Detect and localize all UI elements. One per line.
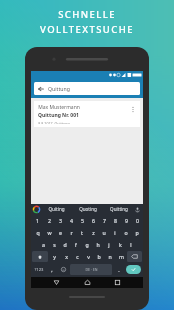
- staticText: 9: [125, 217, 128, 224]
- staticText: VOLLTEXTSUCHE: [40, 23, 134, 36]
- staticText: 2: [48, 217, 51, 224]
- staticText: g: [85, 241, 89, 248]
- staticText: t: [81, 229, 83, 236]
- button[interactable]: 3: [55, 215, 65, 225]
- button[interactable]: Back: [37, 85, 45, 93]
- button[interactable]: ,: [47, 264, 57, 275]
- button[interactable]: h: [93, 239, 103, 249]
- staticText: 5: [81, 217, 84, 224]
- staticText: ?123: [34, 267, 44, 273]
- button[interactable]: More options: [130, 104, 136, 124]
- button[interactable]: 1: [32, 215, 43, 225]
- staticText: x: [65, 253, 68, 260]
- button[interactable]: Back: [34, 82, 140, 95]
- button[interactable]: Emoji: [58, 264, 69, 275]
- staticText: .: [118, 266, 120, 273]
- button[interactable]: w: [44, 227, 54, 237]
- staticText: r: [70, 229, 73, 236]
- staticText: Quittung Nr. 001: [38, 112, 79, 119]
- staticText: Quoting: [79, 206, 97, 212]
- staticText: p: [135, 229, 139, 236]
- button[interactable]: n: [105, 251, 115, 262]
- button[interactable]: 7: [99, 215, 109, 225]
- button[interactable]: e: [55, 227, 65, 237]
- staticText: b: [97, 253, 101, 260]
- button[interactable]: .: [113, 264, 124, 275]
- button[interactable]: Voice input: [134, 206, 141, 213]
- staticText: v: [87, 253, 90, 260]
- staticText: o: [124, 229, 128, 236]
- button[interactable]: Shift: [32, 251, 48, 262]
- button[interactable]: g: [82, 239, 92, 249]
- button[interactable]: Quiting: [40, 204, 72, 214]
- button[interactable]: c: [72, 251, 82, 262]
- button[interactable]: y: [49, 251, 60, 262]
- button[interactable]: 5: [77, 215, 87, 225]
- button[interactable]: Quoting: [72, 204, 103, 214]
- button[interactable]: Home: [82, 277, 93, 288]
- staticText: c: [76, 253, 79, 260]
- button[interactable]: Google: [33, 206, 40, 213]
- staticText: z: [92, 229, 95, 236]
- staticText: f: [75, 241, 77, 248]
- staticText: 8: [114, 217, 117, 224]
- staticText: ,: [51, 266, 53, 273]
- button[interactable]: j: [104, 239, 114, 249]
- staticText: s: [53, 241, 56, 248]
- staticText: w: [47, 229, 52, 236]
- button[interactable]: 9: [121, 215, 131, 225]
- staticText: SCHNELLE: [58, 8, 116, 21]
- staticText: 8.8.2017 Quittung: [38, 121, 70, 124]
- button[interactable]: v: [83, 251, 93, 262]
- button[interactable]: ?123: [32, 264, 46, 275]
- button[interactable]: Recent apps: [112, 277, 123, 288]
- button[interactable]: r: [66, 227, 76, 237]
- staticText: 7: [103, 217, 106, 224]
- staticText: Quiting: [48, 206, 65, 212]
- button[interactable]: z: [88, 227, 98, 237]
- staticText: j: [108, 241, 110, 248]
- button[interactable]: x: [61, 251, 71, 262]
- button[interactable]: u: [99, 227, 109, 237]
- staticText: 6: [92, 217, 95, 224]
- staticText: DE · EN: [85, 267, 98, 272]
- staticText: n: [108, 253, 112, 260]
- button[interactable]: Max Mustermann: [34, 101, 140, 127]
- button[interactable]: 6: [88, 215, 98, 225]
- button[interactable]: Backspace: [127, 251, 142, 262]
- staticText: h: [96, 241, 100, 248]
- staticText: a: [42, 241, 45, 248]
- staticText: Quittung: [48, 85, 70, 92]
- button[interactable]: k: [115, 239, 125, 249]
- button[interactable]: b: [94, 251, 104, 262]
- staticText: Max Mustermann: [38, 104, 80, 111]
- button[interactable]: Back: [51, 277, 62, 288]
- button[interactable]: 8: [110, 215, 120, 225]
- button[interactable]: 4: [66, 215, 76, 225]
- button[interactable]: Quitting: [103, 204, 134, 214]
- button[interactable]: d: [60, 239, 70, 249]
- button[interactable]: q: [32, 227, 43, 237]
- staticText: e: [59, 229, 62, 236]
- button[interactable]: p: [132, 227, 142, 237]
- button[interactable]: f: [71, 239, 81, 249]
- button[interactable]: m: [116, 251, 126, 262]
- staticText: Quitting: [110, 206, 128, 212]
- button[interactable]: Search: [126, 265, 141, 274]
- staticText: m: [119, 253, 124, 260]
- button[interactable]: s: [49, 239, 59, 249]
- button[interactable]: 2: [44, 215, 54, 225]
- staticText: 0: [136, 217, 139, 224]
- staticText: 3: [59, 217, 62, 224]
- button[interactable]: o: [121, 227, 131, 237]
- button[interactable]: t: [77, 227, 87, 237]
- staticText: i: [114, 229, 116, 236]
- staticText: d: [63, 241, 67, 248]
- button[interactable]: a: [38, 239, 48, 249]
- staticText: k: [119, 241, 122, 248]
- button[interactable]: Space: [70, 264, 112, 275]
- button[interactable]: l: [126, 239, 136, 249]
- staticText: y: [53, 253, 56, 260]
- button[interactable]: i: [110, 227, 120, 237]
- button[interactable]: 0: [132, 215, 142, 225]
